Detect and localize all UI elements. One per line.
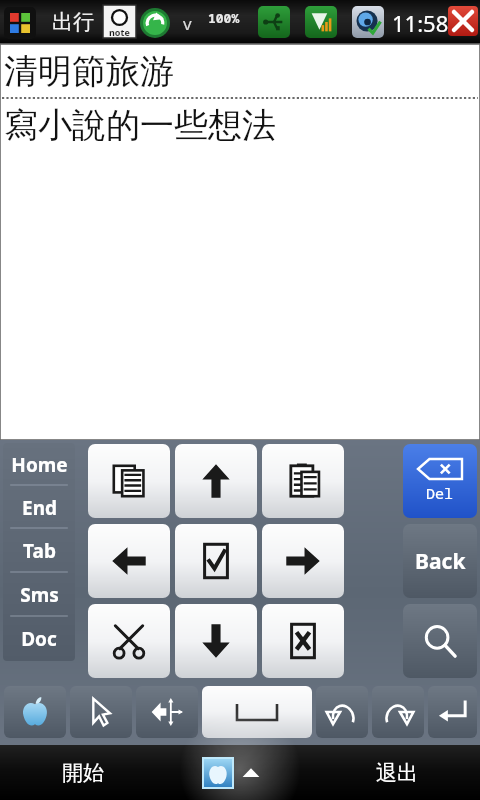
staticText: 清明節旅游 xyxy=(4,50,174,93)
button[interactable]: Paste xyxy=(262,444,344,518)
button[interactable]: Copy xyxy=(88,444,170,518)
staticText: Home xyxy=(11,452,68,478)
button[interactable]: Del xyxy=(403,444,477,518)
button[interactable]: 退出 xyxy=(376,760,418,786)
button[interactable]: Sms xyxy=(3,573,75,617)
button[interactable]: Search xyxy=(403,604,477,678)
button[interactable]: Open menu xyxy=(203,758,261,788)
button[interactable]: Up xyxy=(175,444,257,518)
button[interactable]: Cut xyxy=(88,604,170,678)
staticText: Sms xyxy=(20,582,59,608)
staticText: note xyxy=(109,26,130,38)
button[interactable]: Status icon xyxy=(258,6,290,38)
button[interactable]: Right xyxy=(262,524,344,598)
staticText: 寫小說的一些想法 xyxy=(4,104,276,147)
staticText: 退出 xyxy=(376,760,418,786)
button[interactable]: Down xyxy=(175,604,257,678)
staticText: Del xyxy=(426,483,454,503)
button[interactable]: Pointer xyxy=(70,686,132,738)
button[interactable]: Close xyxy=(262,604,344,678)
staticText: Doc xyxy=(21,626,57,652)
button[interactable]: Enter xyxy=(428,686,477,738)
staticText: 出行 xyxy=(52,9,94,35)
button[interactable]: Move xyxy=(136,686,198,738)
staticText: v xyxy=(183,12,192,35)
button[interactable]: Undo xyxy=(316,686,368,738)
button[interactable]: Redo xyxy=(372,686,424,738)
button[interactable]: Home xyxy=(3,443,75,486)
staticText: 100% xyxy=(208,9,240,27)
button[interactable]: Status icon xyxy=(305,6,337,38)
button[interactable]: Space xyxy=(202,686,312,738)
staticText: Tab xyxy=(23,538,56,564)
button[interactable]: Close xyxy=(448,6,478,36)
button[interactable]: Tab xyxy=(3,529,75,573)
button[interactable]: 開始 xyxy=(62,760,104,786)
button[interactable]: Back xyxy=(403,524,477,598)
staticText: 開始 xyxy=(62,760,104,786)
button[interactable]: End xyxy=(3,486,75,529)
button[interactable]: Doc xyxy=(3,617,75,661)
staticText: End xyxy=(22,495,57,521)
button[interactable]: 清明節旅游 xyxy=(0,44,480,440)
staticText: Back xyxy=(415,547,466,576)
button[interactable]: Apple menu xyxy=(4,686,66,738)
staticText: 11:58 xyxy=(392,8,449,38)
button[interactable]: Start xyxy=(4,7,36,39)
button[interactable]: Select xyxy=(175,524,257,598)
button[interactable]: Left xyxy=(88,524,170,598)
button[interactable]: Volume xyxy=(352,6,384,38)
